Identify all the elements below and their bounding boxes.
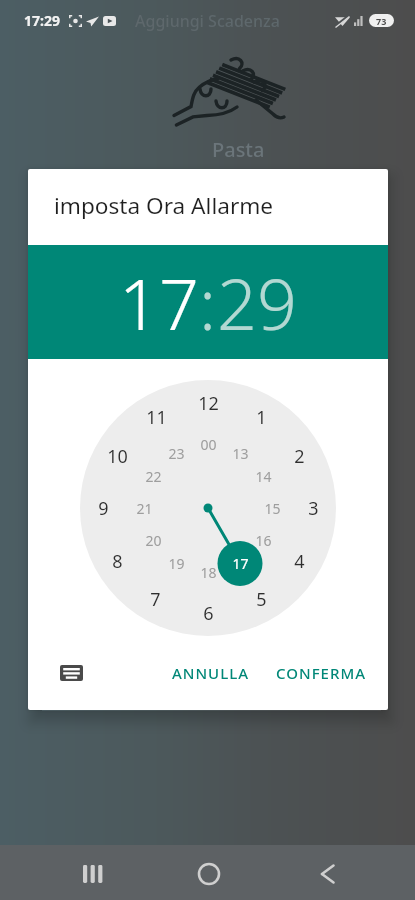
- staticText: CONFERMA: [276, 663, 366, 683]
- button[interactable]: 00: [188, 431, 228, 457]
- button[interactable]: ANNULLA: [164, 654, 258, 692]
- staticText: 5: [256, 587, 267, 612]
- staticText: 73: [376, 15, 387, 27]
- staticText: :: [199, 255, 217, 350]
- staticText: 21: [136, 499, 153, 518]
- staticText: 2: [294, 444, 305, 469]
- staticText: Pasta: [212, 136, 265, 163]
- button[interactable]: 15: [252, 495, 292, 521]
- button[interactable]: 20: [133, 527, 173, 553]
- button[interactable]: 22: [133, 463, 173, 489]
- staticText: 9: [98, 496, 109, 521]
- staticText: 17: [232, 554, 249, 573]
- staticText: 17:29: [24, 11, 60, 30]
- button[interactable]: 29: [217, 255, 297, 350]
- button[interactable]: 7: [135, 586, 175, 612]
- button[interactable]: 21: [124, 495, 164, 521]
- staticText: 22: [145, 467, 162, 486]
- staticText: ANNULLA: [172, 663, 250, 683]
- button[interactable]: 16: [243, 527, 283, 553]
- staticText: Aggiungi Scadenza: [135, 10, 280, 32]
- button[interactable]: 8: [97, 548, 137, 574]
- button[interactable]: Switch to keyboard input: [48, 650, 94, 696]
- button[interactable]: 10: [97, 443, 137, 469]
- staticText: 12: [198, 391, 219, 416]
- button[interactable]: 12: [188, 390, 228, 416]
- button[interactable]: 9: [83, 495, 123, 521]
- button[interactable]: 3: [293, 495, 333, 521]
- button[interactable]: 5: [241, 586, 281, 612]
- button[interactable]: CONFERMA: [268, 654, 374, 692]
- staticText: 8: [112, 549, 123, 574]
- button[interactable]: 4: [279, 548, 319, 574]
- staticText: 14: [255, 467, 272, 486]
- button[interactable]: 19: [156, 550, 196, 576]
- staticText: 10: [107, 444, 128, 469]
- button[interactable]: 6: [188, 600, 228, 626]
- button[interactable]: Home: [185, 850, 233, 898]
- button[interactable]: 23: [156, 440, 196, 466]
- button[interactable]: 17: [119, 255, 199, 350]
- button[interactable]: Recent apps: [69, 850, 117, 898]
- button[interactable]: 14: [243, 463, 283, 489]
- button[interactable]: 13: [220, 440, 260, 466]
- staticText: 23: [168, 444, 185, 463]
- button[interactable]: 18: [188, 559, 228, 585]
- button[interactable]: 17: [220, 550, 260, 576]
- staticText: 4: [294, 549, 305, 574]
- button[interactable]: Back: [303, 850, 351, 898]
- staticText: 18: [200, 563, 217, 582]
- staticText: 00: [200, 435, 217, 454]
- staticText: 20: [145, 531, 162, 550]
- button[interactable]: 1: [241, 404, 281, 430]
- staticText: 1: [256, 405, 267, 430]
- staticText: 15: [264, 499, 281, 518]
- staticText: 11: [146, 405, 167, 430]
- staticText: 3: [308, 496, 319, 521]
- button[interactable]: 11: [136, 404, 176, 430]
- button[interactable]: 2: [279, 443, 319, 469]
- staticText: 13: [232, 444, 249, 463]
- staticText: 19: [168, 554, 185, 573]
- staticText: 6: [203, 601, 214, 626]
- staticText: imposta Ora Allarme: [54, 190, 274, 221]
- staticText: 16: [255, 531, 272, 550]
- staticText: 7: [150, 587, 161, 612]
